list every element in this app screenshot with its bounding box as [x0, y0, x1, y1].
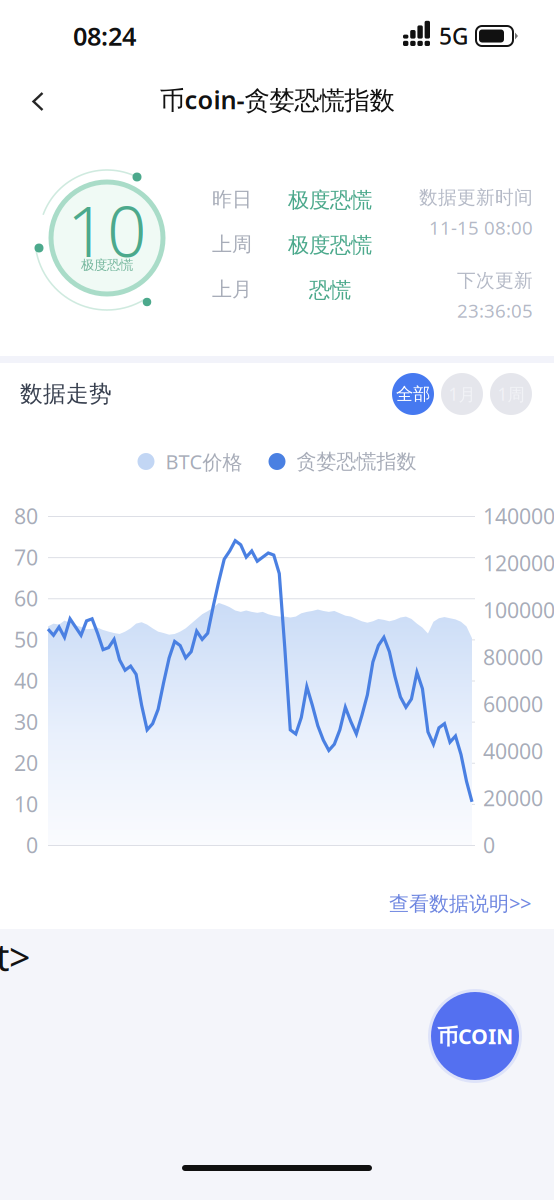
- staticText: 极度恐慌: [288, 232, 372, 258]
- staticText: t>: [0, 932, 30, 982]
- button[interactable]: 币COIN: [428, 989, 522, 1083]
- staticText: 23:36:05: [457, 298, 533, 323]
- staticText: 11-15 08:00: [429, 215, 533, 240]
- button[interactable]: 全部: [392, 373, 434, 415]
- staticText: 币coin-贪婪恐慌指数: [159, 83, 394, 116]
- staticText: 查看数据说明>>: [389, 890, 531, 916]
- staticText: 币COIN: [437, 1022, 513, 1050]
- staticText: 5G: [439, 21, 468, 51]
- staticText: 40: [14, 666, 38, 695]
- button[interactable]: 查看数据说明>>: [389, 882, 554, 924]
- staticText: 30: [14, 707, 38, 736]
- staticText: 100000: [483, 596, 554, 624]
- staticText: 10: [67, 184, 147, 276]
- staticText: 50: [14, 625, 38, 653]
- staticText: 数据更新时间: [419, 186, 533, 209]
- staticText: 1月: [448, 382, 475, 405]
- button[interactable]: Back: [16, 77, 60, 125]
- staticText: 下次更新: [457, 269, 533, 292]
- staticText: 80000: [483, 643, 543, 671]
- button[interactable]: 1月: [441, 373, 483, 415]
- staticText: 140000: [483, 502, 554, 530]
- staticText: 上周: [212, 232, 252, 257]
- staticText: 60: [14, 584, 38, 612]
- staticText: 0: [483, 831, 495, 859]
- staticText: 恐慌: [309, 277, 351, 303]
- staticText: 60000: [483, 690, 543, 718]
- staticText: 70: [14, 543, 38, 571]
- staticText: 昨日: [212, 187, 252, 212]
- staticText: 全部: [396, 383, 430, 405]
- staticText: 极度恐慌: [288, 187, 372, 213]
- staticText: BTC价格: [165, 448, 242, 475]
- staticText: 10: [14, 790, 38, 818]
- staticText: 120000: [483, 549, 554, 577]
- staticText: 40000: [483, 737, 543, 765]
- staticText: 0: [26, 831, 38, 859]
- staticText: 数据走势: [20, 380, 112, 408]
- staticText: 08:24: [73, 19, 136, 53]
- staticText: 80: [14, 502, 38, 530]
- staticText: 上月: [212, 277, 252, 302]
- staticText: 20: [14, 749, 38, 777]
- staticText: 1周: [497, 382, 524, 405]
- staticText: 贪婪恐慌指数: [296, 449, 416, 474]
- button[interactable]: 1周: [490, 373, 532, 415]
- staticText: 20000: [483, 784, 543, 812]
- staticText: 极度恐慌: [81, 257, 133, 273]
